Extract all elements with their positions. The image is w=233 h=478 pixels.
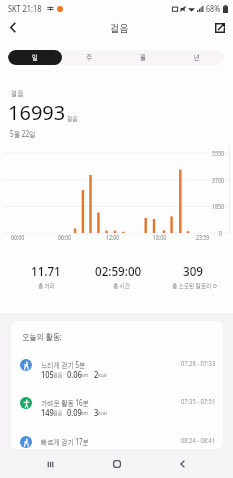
staticText: 주 [86, 53, 92, 62]
staticText: 년 [194, 53, 200, 62]
button[interactable]: 년 [170, 50, 224, 65]
staticText: 3700 [212, 176, 224, 185]
staticText: 105 [41, 369, 54, 381]
staticText: 총 시간 [113, 281, 131, 290]
staticText: 07:28 - 07:33 [181, 359, 215, 369]
staticText: 149 [41, 407, 54, 419]
staticText: 06:00 [58, 233, 72, 242]
button[interactable]: Home [94, 450, 139, 478]
staticText: 걸음 [110, 21, 128, 35]
staticText: kcal [98, 371, 107, 379]
button[interactable]: 주 [62, 50, 116, 65]
staticText: 가벼운 활동 16분 [41, 397, 89, 408]
button[interactable]: 가벼운 활동 16분 [11, 391, 223, 418]
button[interactable]: 느리게 걷기 5분 [11, 353, 223, 380]
button[interactable]: 월 [116, 50, 170, 65]
staticText: 1850 [212, 202, 224, 211]
staticText: 0.09 [67, 407, 82, 419]
staticText: 총 소모된 칼로리 ⊙ [172, 281, 218, 290]
staticText: 309 [183, 263, 203, 280]
staticText: 느리게 걷기 5분 [41, 359, 85, 370]
staticText: 11.71 [31, 263, 62, 280]
staticText: 23:59 [196, 233, 210, 242]
staticText: 00:00 [11, 233, 25, 242]
staticText: 07:35 - 07:51 [181, 397, 215, 407]
staticText: SKT 21:18 [8, 3, 42, 14]
staticText: 12:00 [106, 233, 120, 242]
staticText: 일 [32, 53, 38, 62]
staticText: 5월 22일 [10, 128, 36, 139]
staticText: 걸음 [11, 89, 23, 98]
button[interactable]: 일 [8, 50, 62, 65]
staticText: 걸음 [53, 409, 63, 417]
staticText: 2 [94, 369, 98, 381]
staticText: 68% [206, 3, 220, 14]
staticText: 빠르게 걷기 17분 [41, 436, 89, 447]
staticText: 08:24 - 08:41 [181, 436, 215, 446]
staticText: 월 [140, 53, 146, 62]
staticText: 16993 [8, 99, 66, 126]
staticText: 오늘의 활동: [22, 330, 62, 342]
button[interactable]: Back [160, 450, 205, 478]
button[interactable]: 02:59:00 [81, 262, 157, 292]
staticText: 걸음 [53, 371, 63, 379]
staticText: km [81, 409, 88, 417]
staticText: 0.06 [67, 369, 82, 381]
staticText: 02:59:00 [95, 263, 141, 280]
button[interactable]: Open in new window [207, 15, 232, 40]
button[interactable]: Recent apps [28, 450, 73, 478]
staticText: 0 [219, 229, 222, 238]
staticText: 3 [94, 407, 98, 419]
staticText: 5550 [212, 149, 224, 158]
staticText: 걸음 [67, 115, 78, 123]
button[interactable]: 309 [152, 262, 228, 292]
staticText: 총 거리 [38, 281, 56, 290]
button[interactable]: 11.71 [6, 262, 82, 292]
staticText: kcal [98, 409, 107, 417]
button[interactable]: 빠르게 걷기 17분 [11, 430, 223, 446]
button[interactable]: Back [0, 15, 25, 40]
staticText: 18:00 [153, 233, 167, 242]
staticText: km [81, 371, 88, 379]
